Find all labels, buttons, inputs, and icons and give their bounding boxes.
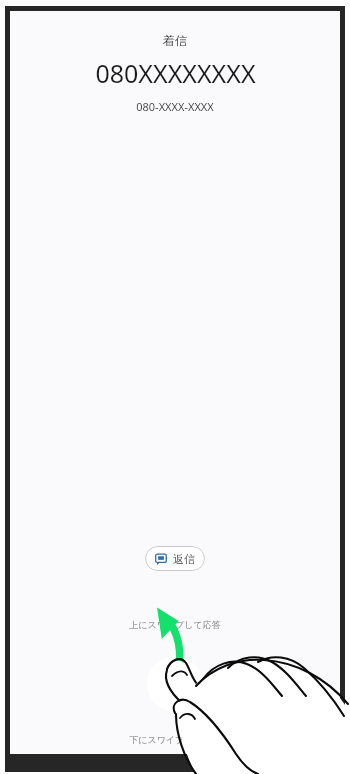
staticText: 080XXXXXXXX: [95, 56, 256, 90]
staticText: 下にスワイプして拒否: [129, 734, 221, 745]
staticText: 返信: [173, 552, 195, 566]
staticText: 080-XXXX-XXXX: [136, 99, 214, 114]
button[interactable]: Answer call: [147, 656, 203, 712]
staticText: 上にスワイプして応答: [129, 619, 221, 630]
button[interactable]: 返信: [145, 546, 205, 571]
staticText: 着信: [163, 33, 187, 48]
